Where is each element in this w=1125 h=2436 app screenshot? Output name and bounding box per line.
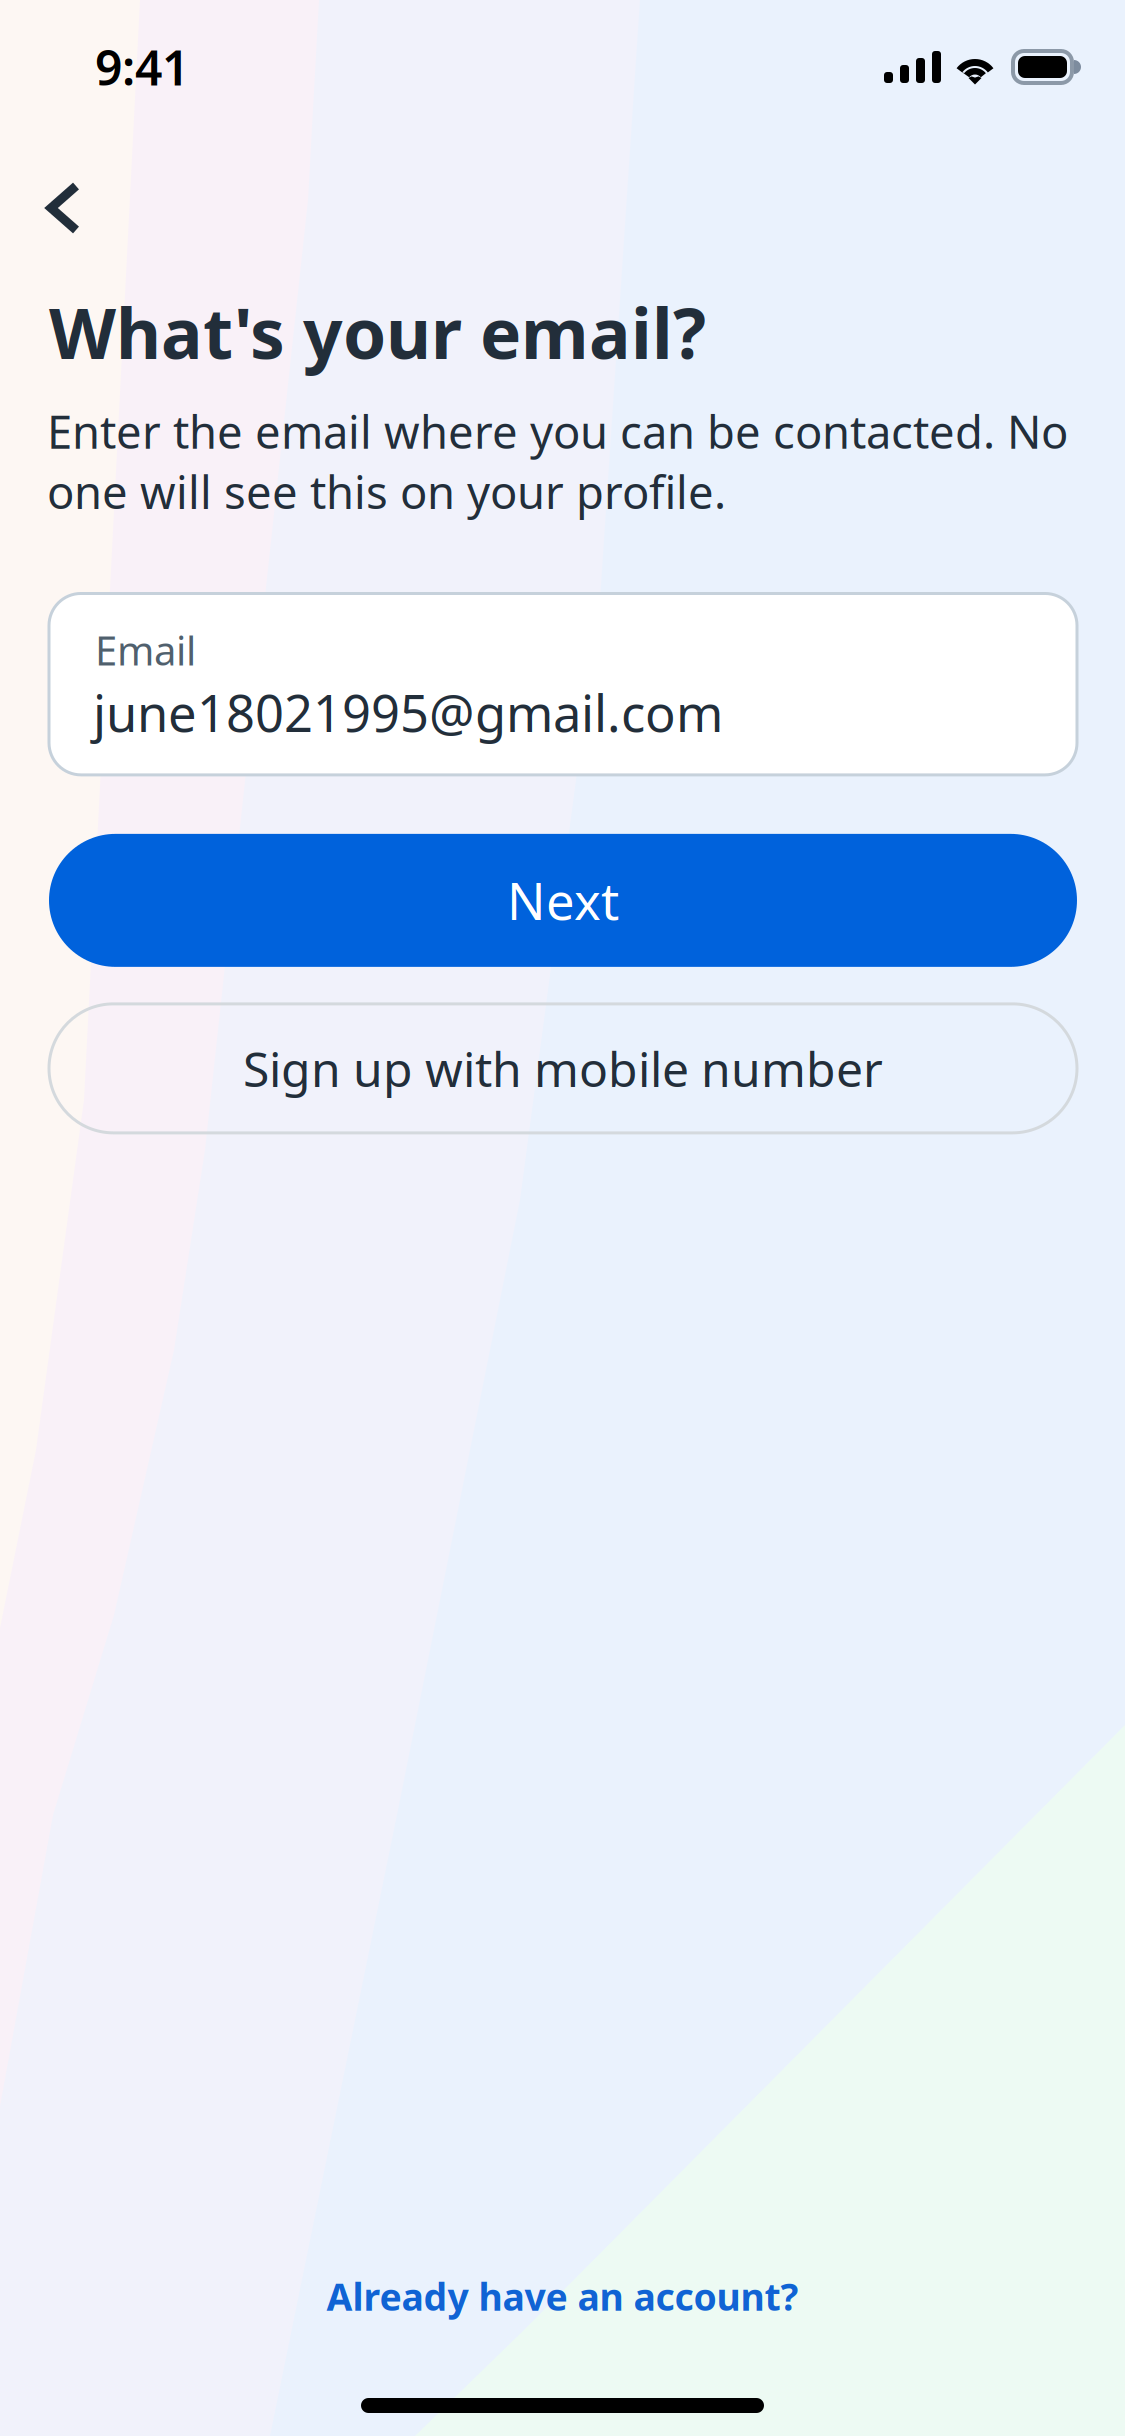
staticText: june18021995@gmail.com [93,679,723,746]
staticText: Enter the email where you can be contact… [47,401,1068,521]
button[interactable]: Sign up with mobile number [49,1004,1077,1133]
staticText: Email [95,623,196,677]
staticText: Sign up with mobile number [243,1036,883,1100]
staticText: What's your email? [49,286,706,378]
staticText: Already have an account? [326,2271,798,2321]
button[interactable]: Next [49,834,1077,967]
staticText: 9:41 [95,35,189,99]
button[interactable]: Already have an account? [0,2238,1125,2336]
button[interactable]: Back [0,167,130,249]
staticText: Next [507,867,619,934]
